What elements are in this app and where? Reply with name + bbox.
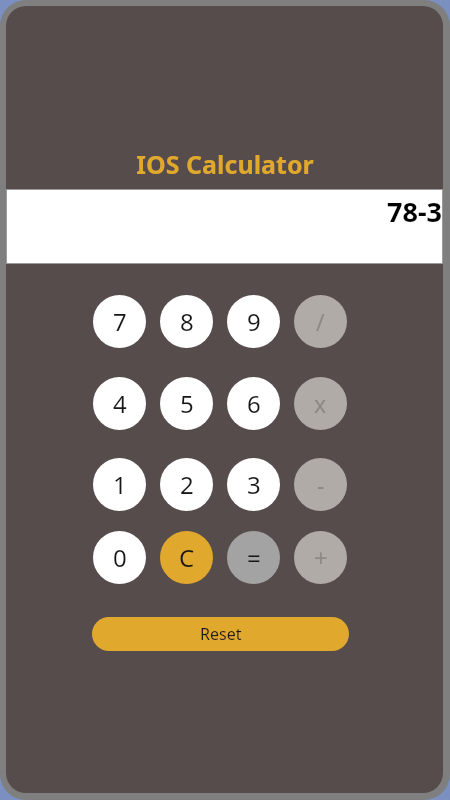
button[interactable]: 8 bbox=[160, 295, 213, 348]
button[interactable]: Clear bbox=[160, 531, 213, 584]
button[interactable]: Equals bbox=[227, 531, 280, 584]
staticText: 8 bbox=[180, 305, 194, 338]
staticText: Reset bbox=[200, 623, 242, 645]
staticText: + bbox=[314, 541, 328, 574]
staticText: x bbox=[314, 388, 327, 419]
staticText: 1 bbox=[113, 468, 127, 501]
button[interactable]: Add bbox=[294, 531, 347, 584]
button[interactable]: Multiply bbox=[294, 377, 347, 430]
button[interactable]: 2 bbox=[160, 458, 213, 511]
staticText: 0 bbox=[113, 541, 127, 574]
button[interactable]: 4 bbox=[93, 377, 146, 430]
staticText: 4 bbox=[113, 387, 127, 420]
staticText: = bbox=[247, 541, 261, 574]
button[interactable]: Subtract bbox=[294, 458, 347, 511]
staticText: / bbox=[316, 306, 325, 337]
staticText: 9 bbox=[247, 305, 261, 338]
button[interactable]: 3 bbox=[227, 458, 280, 511]
button[interactable]: 7 bbox=[93, 295, 146, 348]
staticText: 78-3 bbox=[387, 193, 442, 230]
button[interactable]: 0 bbox=[93, 531, 146, 584]
staticText: IOS Calculator bbox=[136, 147, 314, 181]
staticText: 5 bbox=[180, 387, 194, 420]
button[interactable]: Divide bbox=[294, 295, 347, 348]
staticText: 6 bbox=[247, 387, 261, 420]
staticText: 7 bbox=[113, 305, 127, 338]
button[interactable]: 6 bbox=[227, 377, 280, 430]
staticText: 3 bbox=[247, 468, 261, 501]
button[interactable]: 9 bbox=[227, 295, 280, 348]
button[interactable]: 1 bbox=[93, 458, 146, 511]
staticText: - bbox=[317, 469, 325, 500]
staticText: 2 bbox=[180, 468, 194, 501]
button[interactable]: 78-3 bbox=[7, 190, 442, 263]
button[interactable]: Reset bbox=[92, 617, 349, 651]
staticText: C bbox=[179, 541, 195, 574]
button[interactable]: 5 bbox=[160, 377, 213, 430]
